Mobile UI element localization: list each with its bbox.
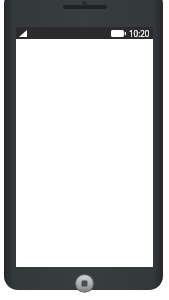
other: Signal strength	[19, 30, 27, 37]
button[interactable]: Home	[75, 274, 94, 293]
other: Battery full	[111, 30, 126, 37]
staticText: 10:20	[129, 28, 150, 39]
